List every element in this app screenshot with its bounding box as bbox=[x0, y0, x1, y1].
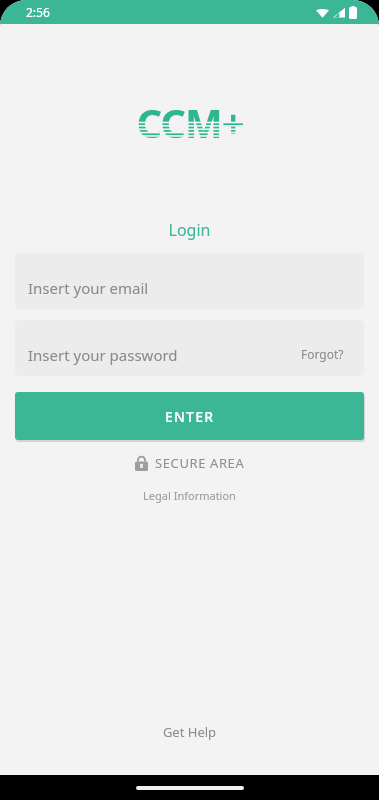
button[interactable]: Get Help bbox=[0, 719, 379, 745]
button[interactable]: Forgot? bbox=[301, 346, 364, 376]
staticText: SECURE AREA bbox=[155, 454, 245, 472]
button[interactable]: Legal Information bbox=[0, 486, 379, 505]
staticText: CCM+ bbox=[122, 95, 258, 141]
staticText: Login bbox=[0, 219, 379, 241]
other: Secure area bbox=[135, 455, 148, 471]
staticText: 2:56 bbox=[26, 4, 50, 20]
button[interactable]: ENTER bbox=[15, 392, 364, 440]
button[interactable]: Insert your email bbox=[15, 253, 364, 309]
staticText: Insert your password bbox=[28, 345, 178, 365]
button[interactable]: Secure area bbox=[0, 452, 379, 474]
staticText: Insert your email bbox=[28, 278, 149, 298]
button[interactable]: Insert your password bbox=[15, 320, 364, 376]
staticText: ENTER bbox=[165, 407, 215, 426]
